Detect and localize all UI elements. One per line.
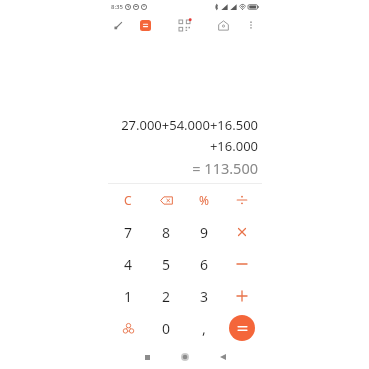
button[interactable]: 8 xyxy=(147,216,185,248)
button[interactable]: Percent xyxy=(185,184,223,216)
button[interactable]: 4 xyxy=(109,248,147,280)
button[interactable]: 3 xyxy=(185,280,223,312)
staticText: 9 xyxy=(200,223,209,242)
button[interactable]: 6 xyxy=(185,248,223,280)
button[interactable]: 1 xyxy=(109,280,147,312)
button[interactable]: Plus xyxy=(223,280,261,312)
button[interactable]: Collapse xyxy=(109,16,127,34)
button[interactable]: Recents xyxy=(138,350,156,364)
button[interactable]: 9 xyxy=(185,216,223,248)
staticText: 6 xyxy=(200,255,209,274)
button[interactable]: Equals xyxy=(229,315,255,341)
button[interactable]: 0 xyxy=(147,312,185,344)
button[interactable]: Home xyxy=(176,350,194,364)
button[interactable]: Minus xyxy=(223,248,261,280)
button[interactable]: 7 xyxy=(109,216,147,248)
staticText: 8:35 xyxy=(111,3,123,11)
button[interactable]: 2 xyxy=(147,280,185,312)
button[interactable]: Multiply xyxy=(223,216,261,248)
staticText: 27.000+54.000+16.500 xyxy=(108,116,258,134)
staticText: 0 xyxy=(162,319,171,338)
button[interactable]: Home xyxy=(214,16,232,34)
staticText: +16.000 xyxy=(108,137,258,155)
staticText: 1 xyxy=(124,287,133,306)
staticText: 5 xyxy=(162,255,171,274)
button[interactable]: Backspace xyxy=(147,184,185,216)
button[interactable]: Divide xyxy=(223,184,261,216)
button[interactable]: Scan xyxy=(175,16,193,34)
staticText: 2 xyxy=(162,287,171,306)
button[interactable]: Back xyxy=(214,350,232,364)
staticText: = 113.500 xyxy=(108,158,258,178)
button[interactable]: Clear xyxy=(109,184,147,216)
staticText: , xyxy=(202,319,206,338)
button[interactable]: 5 xyxy=(147,248,185,280)
button[interactable]: More options xyxy=(242,16,260,34)
button[interactable]: Scientific mode xyxy=(109,312,147,344)
staticText: C xyxy=(124,192,132,208)
staticText: 8 xyxy=(162,223,171,242)
staticText: 3 xyxy=(200,287,209,306)
staticText: 4 xyxy=(124,255,133,274)
staticText: % xyxy=(199,192,209,208)
staticText: 7 xyxy=(124,223,133,242)
button[interactable]: , xyxy=(185,312,223,344)
button[interactable]: Calculator xyxy=(136,16,154,34)
